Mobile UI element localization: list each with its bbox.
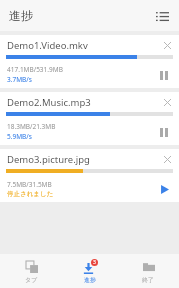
button[interactable]: Cancel download	[158, 36, 176, 54]
staticText: 停止されました	[7, 190, 54, 198]
button[interactable]: 終了	[121, 254, 175, 288]
staticText: Demo1.Video.mkv	[7, 39, 158, 52]
staticText: 3.7MB/s	[7, 75, 32, 84]
staticText: 18.3MB/21.3MB	[7, 122, 56, 131]
button[interactable]: Cancel download	[158, 93, 176, 111]
staticText: 3	[93, 259, 96, 266]
button[interactable]: Cancel download	[158, 150, 176, 168]
button[interactable]: Pause	[153, 64, 175, 86]
button[interactable]: タブ	[4, 254, 58, 288]
staticText: Demo2.Music.mp3	[7, 96, 158, 109]
staticText: Demo3.picture.jpg	[7, 153, 158, 166]
button[interactable]: Demo1.Video.mkv	[0, 35, 179, 88]
staticText: 7.5MB/31.5MB	[7, 180, 52, 189]
button[interactable]: Sort list	[151, 5, 173, 27]
staticText: 進捗	[84, 276, 96, 284]
button[interactable]: Resume	[153, 178, 175, 200]
button[interactable]: Pause	[153, 121, 175, 143]
staticText: 417.1MB/531.9MB	[7, 65, 63, 74]
staticText: 5.9MB/s	[7, 132, 32, 141]
staticText: タブ	[25, 276, 38, 284]
staticText: 終了	[142, 276, 154, 284]
button[interactable]: Demo2.Music.mp3	[0, 92, 179, 145]
button[interactable]: 3	[63, 254, 117, 288]
staticText: 進捗	[9, 8, 33, 23]
button[interactable]: Demo3.picture.jpg	[0, 149, 179, 202]
